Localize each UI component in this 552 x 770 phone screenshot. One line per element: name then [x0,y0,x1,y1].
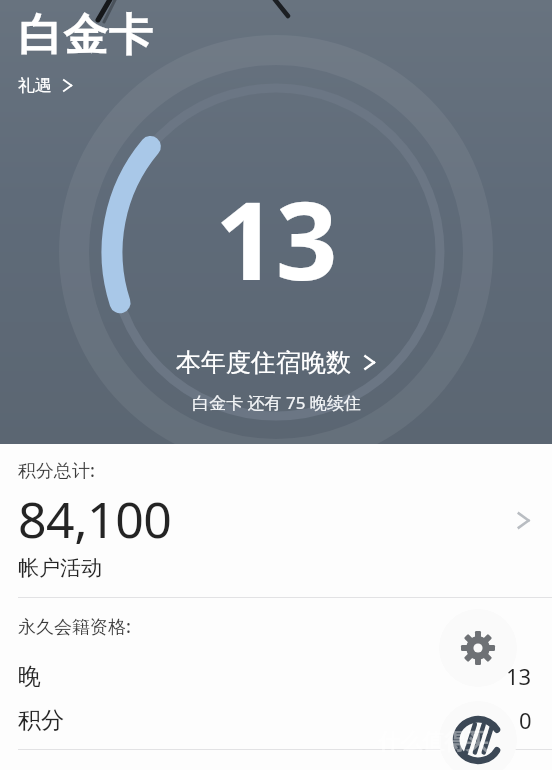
button[interactable]: Bonvoy [439,701,517,770]
staticText: 永久会籍资格: [18,614,131,639]
button[interactable]: 礼遇 [18,73,84,98]
button[interactable]: 本年度住宿晚数 [170,345,383,380]
button[interactable]: Settings [439,609,517,687]
staticText: 白金卡 [18,8,153,63]
button[interactable]: 积分总计: [0,444,552,597]
staticText: 本年度住宿晚数 [176,347,351,378]
staticText: 什么值得买 [378,728,488,756]
button[interactable]: 晚 [0,661,552,705]
staticText: 帐户活动 [18,555,102,581]
staticText: 13 [215,165,337,312]
staticText: 晚 [18,662,41,691]
staticText: 积分总计: [18,458,95,483]
staticText: 积分 [18,706,64,735]
button[interactable]: 积分 [0,705,552,749]
staticText: 礼遇 [18,75,52,96]
staticText: 白金卡 还有 75 晚续住 [192,391,361,414]
staticText: 13 [506,661,532,691]
staticText: 84,100 [18,485,172,553]
staticText: 0 [519,705,532,735]
